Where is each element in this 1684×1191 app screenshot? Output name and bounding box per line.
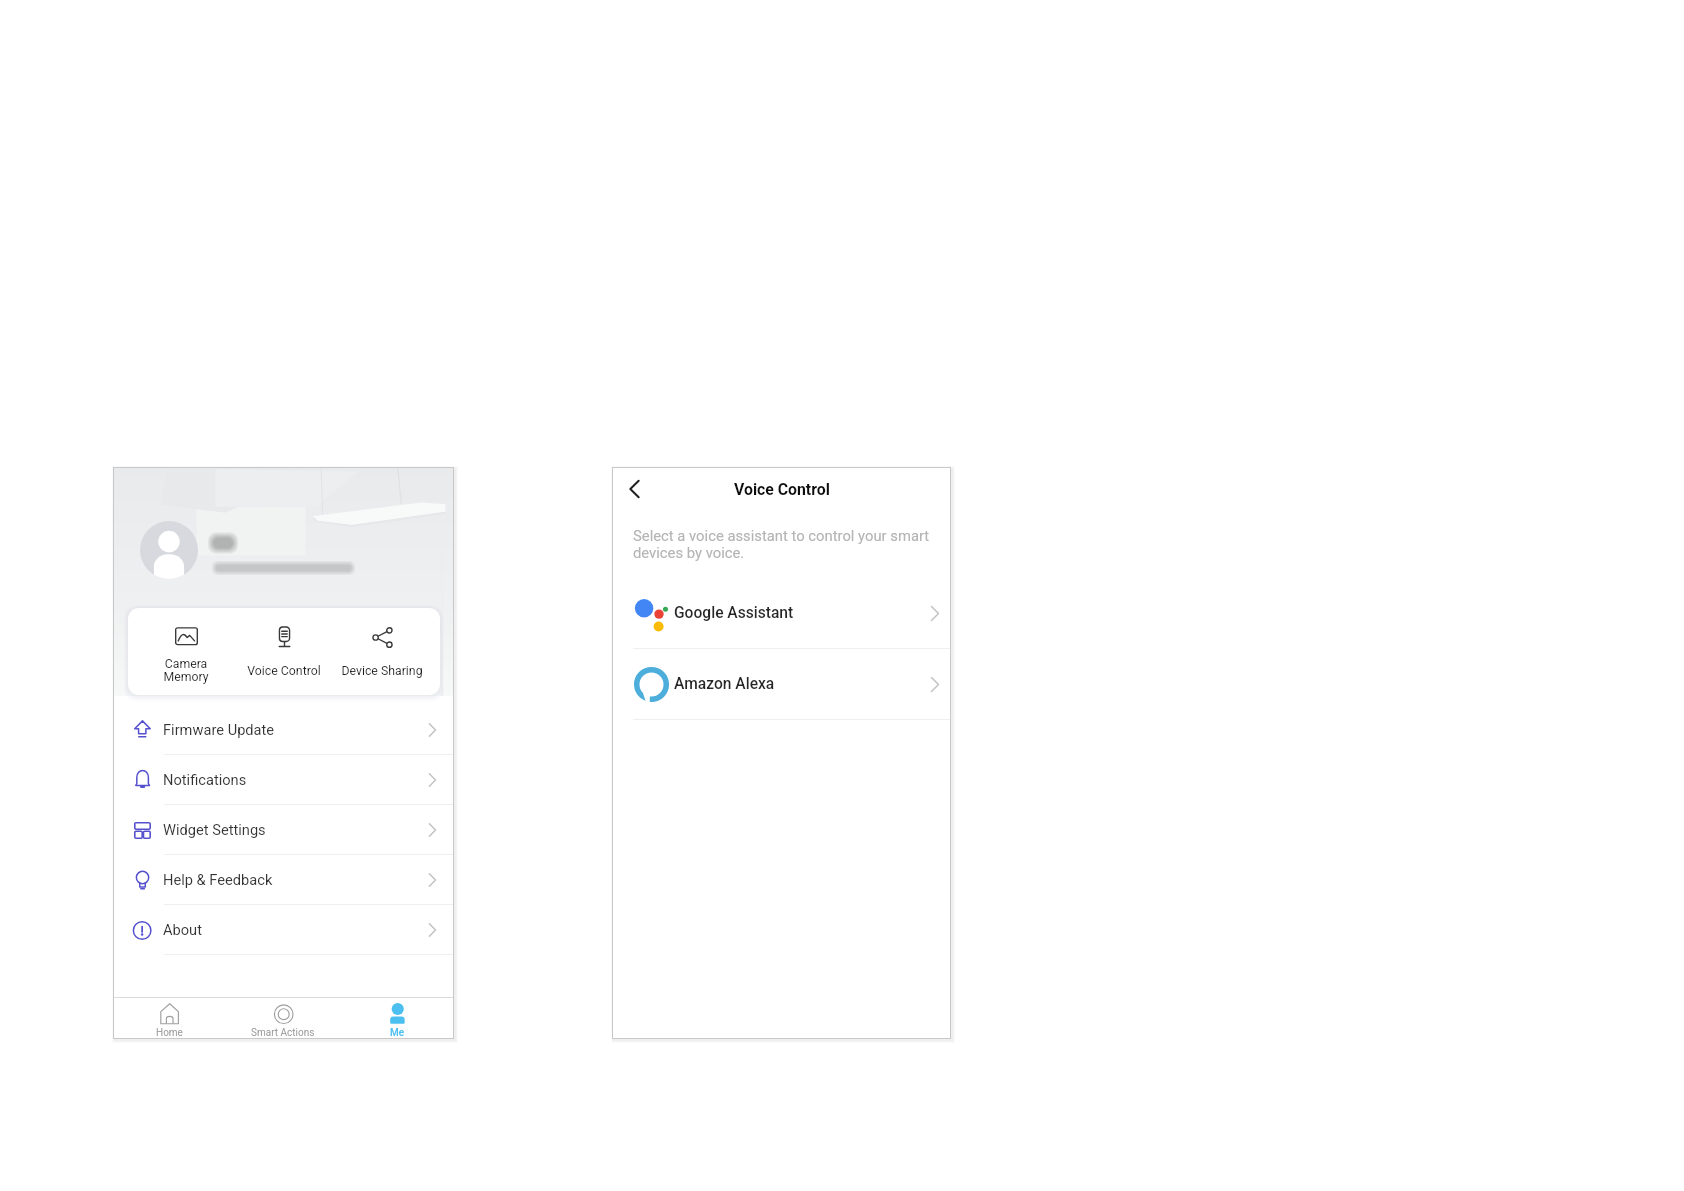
staticText: Widget Settings [163,821,266,838]
button[interactable]: Device Sharing [333,608,431,695]
button[interactable]: Notifications [113,755,454,804]
button[interactable]: Amazon Alexa [612,649,951,719]
button[interactable]: Home [113,998,226,1039]
staticText: Notifications [163,771,247,788]
staticText: Smart Actions [251,1027,315,1039]
button[interactable]: Back [617,467,651,511]
button[interactable]: Me [340,998,454,1039]
button[interactable]: Smart Actions [226,998,340,1039]
staticText: Amazon Alexa [674,675,775,693]
button[interactable]: Profile photo [140,521,198,579]
staticText: Help & Feedback [163,871,273,888]
button[interactable]: Camera Memory [137,608,235,695]
button[interactable]: Voice Control [235,608,333,695]
button[interactable]: Firmware Update [113,705,454,754]
staticText: Voice Control [247,664,321,678]
staticText: Camera Memory [163,657,209,684]
staticText: Device Sharing [341,664,423,678]
staticText: Google Assistant [674,604,794,622]
staticText: Select a voice assistant to control your… [633,527,944,561]
staticText: About [163,921,202,938]
staticText: Firmware Update [163,721,275,738]
staticText: Home [156,1027,183,1039]
button[interactable]: About [113,905,454,954]
button[interactable]: Help & Feedback [113,855,454,904]
button[interactable]: Google Assistant [612,578,951,648]
staticText: Voice Control [734,480,830,499]
button[interactable]: Widget Settings [113,805,454,854]
staticText: Me [390,1027,405,1039]
